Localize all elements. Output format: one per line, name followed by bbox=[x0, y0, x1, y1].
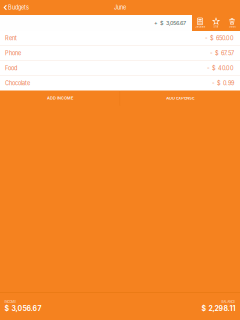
button[interactable]: Rent bbox=[0, 31, 240, 46]
button[interactable]: Star bbox=[208, 15, 224, 31]
staticText: Rent bbox=[5, 35, 17, 42]
staticText: June bbox=[114, 4, 126, 11]
staticText: - $ 67.57 bbox=[210, 50, 234, 57]
button[interactable]: ADD INCOME bbox=[0, 91, 120, 106]
button[interactable]: Delete bbox=[224, 15, 240, 31]
staticText: $ 2,298.11 bbox=[201, 304, 235, 313]
staticText: BALANCE bbox=[221, 300, 235, 304]
button[interactable]: ADD EXPENSE bbox=[120, 91, 240, 106]
staticText: $ 3,056.67 bbox=[4, 304, 41, 313]
button[interactable]: Food bbox=[0, 61, 240, 76]
staticText: ADD EXPENSE bbox=[166, 96, 194, 100]
staticText: - $ 40.00 bbox=[207, 65, 234, 72]
staticText: Calculator bbox=[194, 25, 205, 28]
button[interactable]: Chocolate bbox=[0, 76, 240, 91]
button[interactable]: Phone bbox=[0, 46, 240, 61]
staticText: Star bbox=[213, 25, 218, 28]
staticText: + $ 3,056.67 bbox=[154, 20, 186, 26]
staticText: Chocolate bbox=[5, 80, 30, 87]
staticText: Delete bbox=[228, 25, 235, 28]
staticText: - $ 0.99 bbox=[212, 80, 234, 87]
staticText: Food bbox=[5, 65, 17, 72]
staticText: - $ 650.00 bbox=[205, 35, 234, 42]
button[interactable]: Calculator bbox=[192, 15, 208, 31]
staticText: INCOME bbox=[4, 300, 16, 304]
staticText: Phone bbox=[5, 50, 21, 57]
staticText: ADD INCOME bbox=[47, 96, 73, 100]
button[interactable]: Budgets bbox=[0, 2, 29, 13]
staticText: Budgets bbox=[8, 4, 29, 11]
